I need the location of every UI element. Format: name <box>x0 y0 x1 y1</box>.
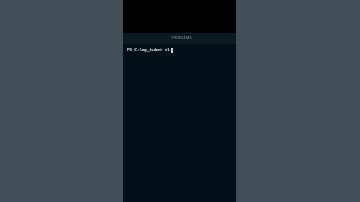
button[interactable]: PROBLEMS <box>127 33 236 44</box>
staticText: PS C:\my_tube> x1 <box>127 47 170 53</box>
staticText: PROBLEMS <box>171 35 192 40</box>
